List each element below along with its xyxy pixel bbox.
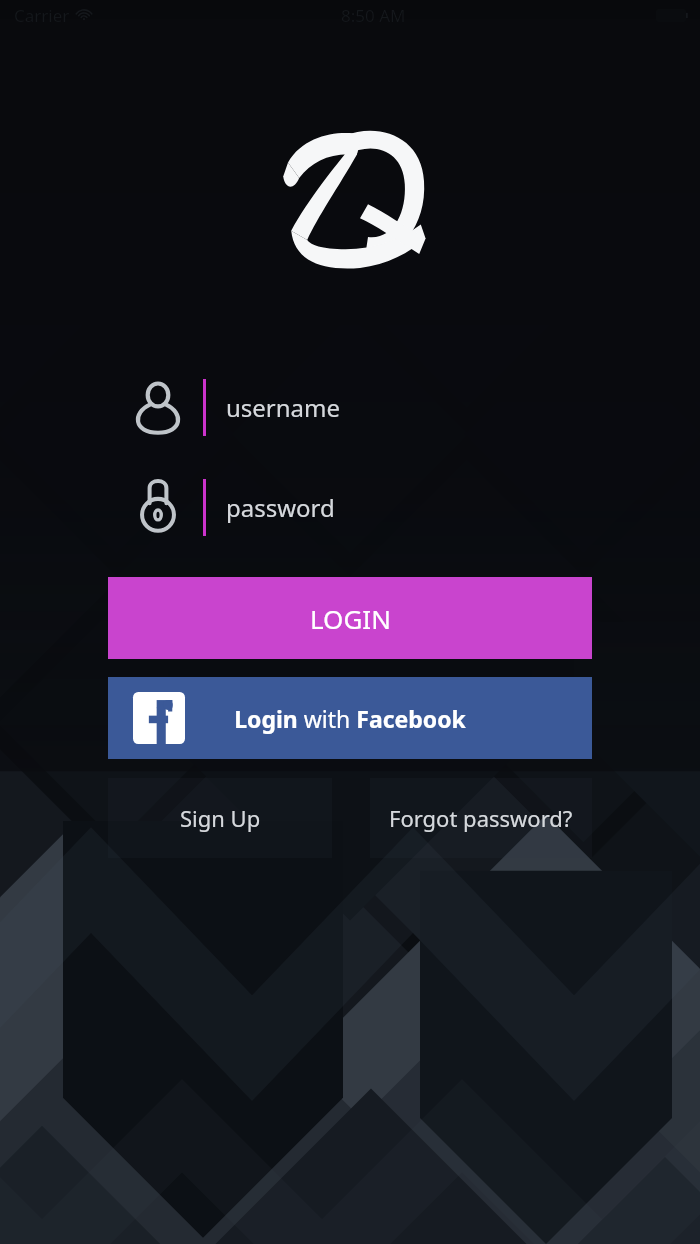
button[interactable]: Username xyxy=(0,372,700,442)
button[interactable]: LOGIN xyxy=(108,577,592,659)
staticText: Sign Up xyxy=(180,803,261,833)
other: Username xyxy=(130,379,186,435)
button[interactable]: Login with Facebook xyxy=(108,677,592,759)
staticText: 8:50 AM xyxy=(341,4,406,27)
staticText: password xyxy=(226,491,335,524)
staticText: username xyxy=(226,391,341,424)
staticText: Login with Facebook xyxy=(234,703,466,734)
staticText: Forgot password? xyxy=(389,803,573,833)
button[interactable]: Password xyxy=(0,472,700,542)
button[interactable]: Sign Up xyxy=(108,778,332,858)
button[interactable]: Forgot password? xyxy=(370,778,592,858)
staticText: Carrier xyxy=(14,4,70,27)
staticText: LOGIN xyxy=(310,601,391,636)
other: Password xyxy=(130,479,186,535)
